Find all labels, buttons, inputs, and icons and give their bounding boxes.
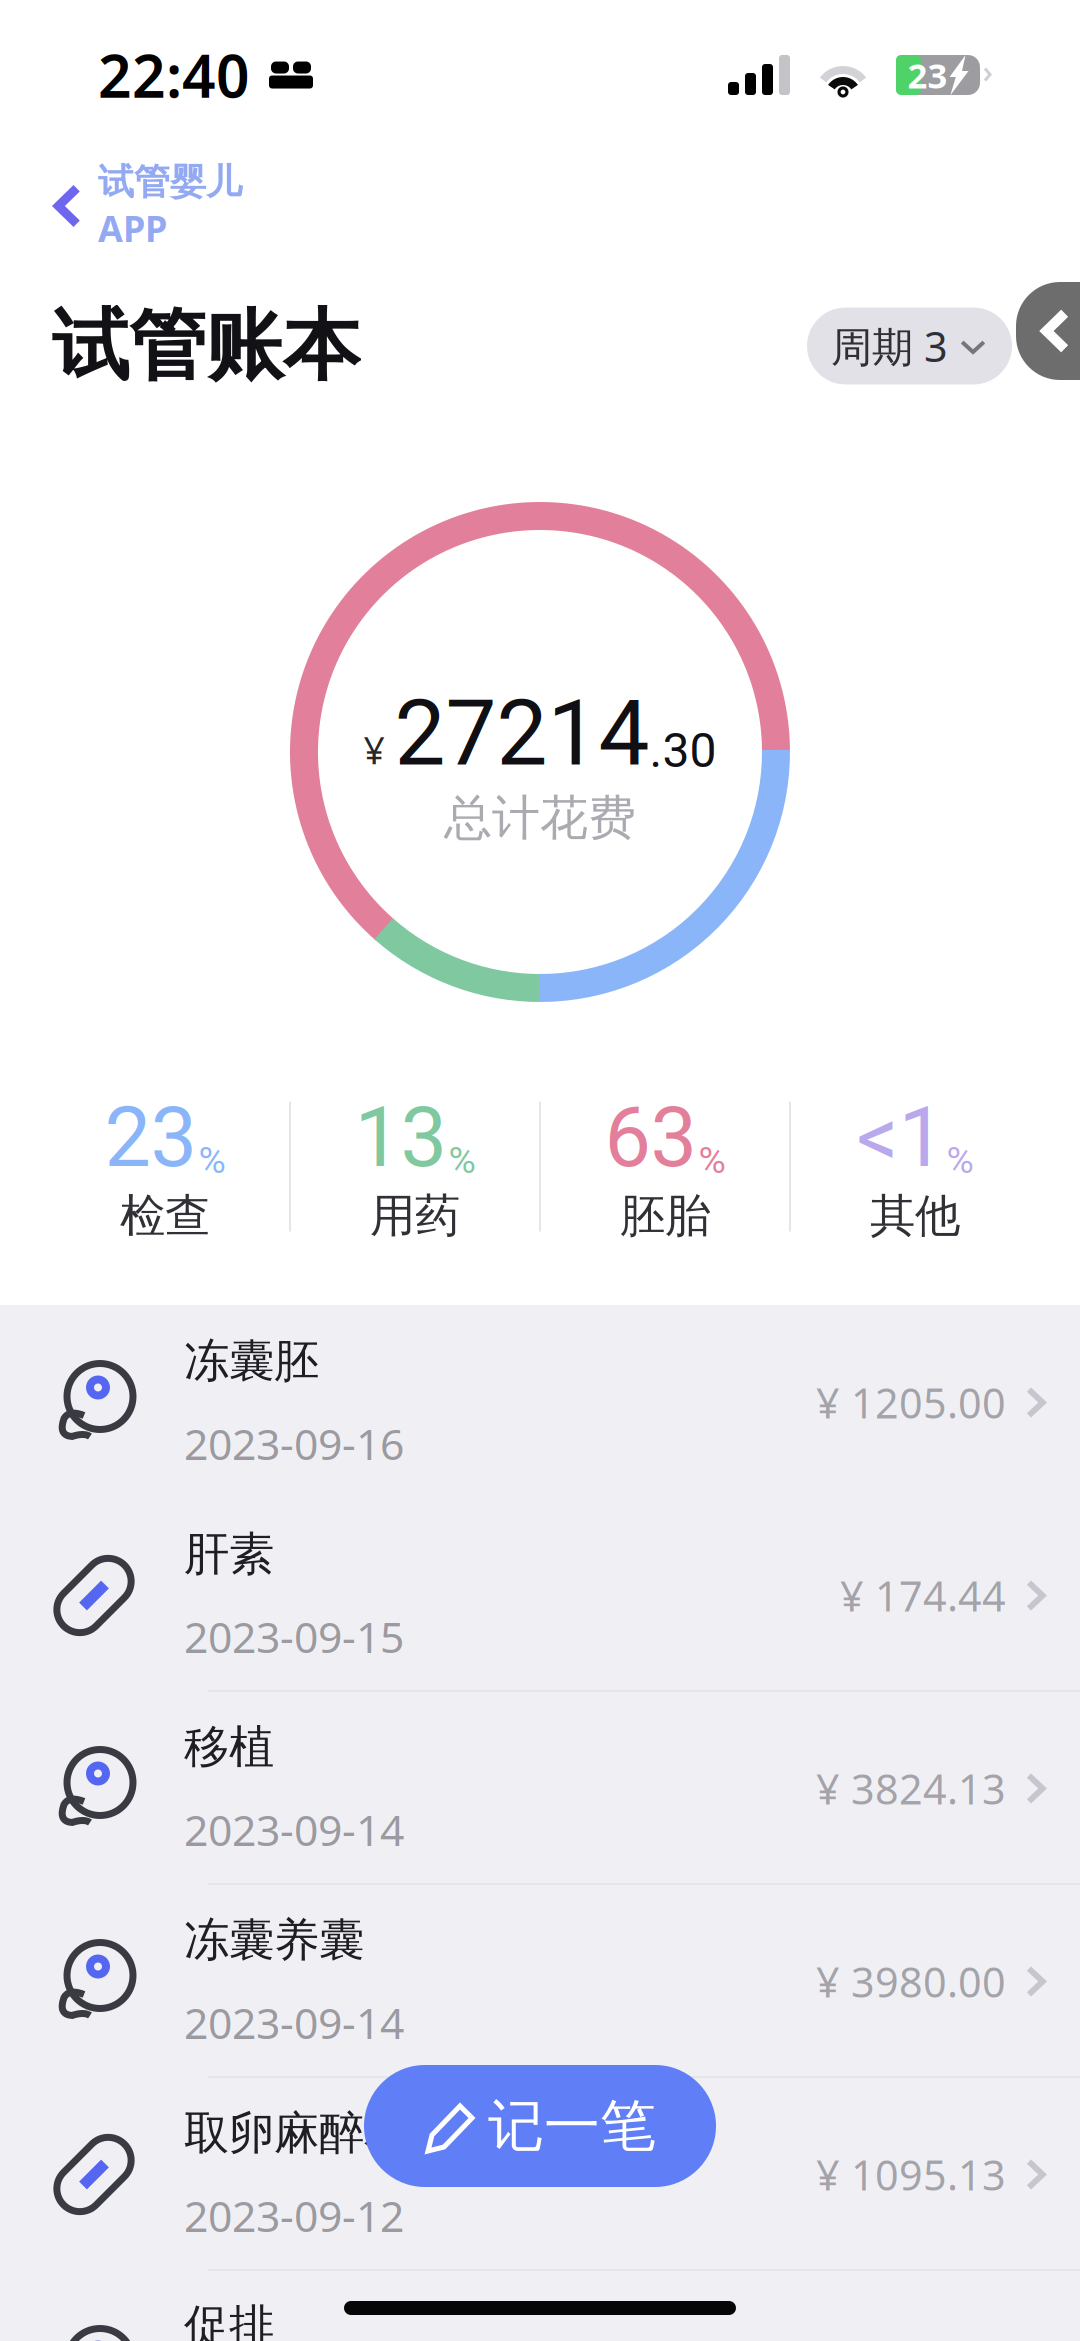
staticText: 63 [604, 1089, 696, 1186]
staticText: % [698, 1138, 725, 1182]
staticText: 取卵麻醉和 [184, 2105, 409, 2161]
staticText: 23 [104, 1089, 196, 1186]
staticText: ¥ 3980.00 [816, 1954, 1006, 2009]
staticText: 冻囊养囊 [184, 1912, 364, 1968]
staticText: % [448, 1138, 475, 1182]
button[interactable]: 冻囊胚 [0, 1306, 1080, 1499]
staticText: <1 [856, 1089, 944, 1186]
staticText: 用药 [370, 1188, 460, 1244]
staticText: 2023-09-14 [184, 1994, 404, 2051]
staticText: ¥ [363, 725, 384, 775]
staticText: 胚胎 [620, 1188, 710, 1244]
staticText: 试管婴儿 [98, 160, 242, 204]
staticText: 13 [354, 1089, 446, 1186]
staticText: 2023-09-15 [184, 1608, 404, 1665]
staticText: 冻囊胚 [184, 1333, 319, 1389]
staticText: ¥ 1205.00 [816, 1375, 1006, 1430]
staticText: 肝素 [184, 1526, 274, 1582]
staticText: 移植 [184, 1719, 274, 1775]
staticText: % [946, 1138, 973, 1182]
button[interactable]: 试管婴儿 [0, 160, 242, 252]
staticText: 试管账本 [52, 298, 360, 393]
button[interactable]: 肝素 [0, 1499, 1080, 1692]
staticText: 22:40 [98, 36, 250, 114]
staticText: ¥ 174.44 [840, 1568, 1006, 1623]
staticText: 2023-09-14 [184, 1801, 404, 1858]
button[interactable]: 记一笔 [364, 2065, 716, 2187]
staticText: 27214 [394, 680, 649, 787]
button[interactable]: 周期 3 [807, 308, 1012, 384]
staticText: ¥ 3824.13 [816, 1761, 1006, 1816]
button[interactable]: 促排 [0, 2271, 1080, 2341]
staticText: 周期 3 [831, 319, 948, 373]
staticText: % [198, 1138, 225, 1182]
staticText: 2023-09-12 [184, 2187, 404, 2244]
staticText: 检查 [120, 1188, 210, 1244]
staticText: 23 [907, 52, 947, 98]
staticText: .30 [649, 722, 716, 779]
staticText: 其他 [870, 1188, 960, 1244]
button[interactable]: 冻囊养囊 [0, 1885, 1080, 2078]
staticText: 促排 [184, 2298, 274, 2341]
button[interactable]: 取卵麻醉和 [0, 2078, 1080, 2271]
button[interactable]: Back [1016, 282, 1080, 380]
button[interactable]: 移植 [0, 1692, 1080, 1885]
staticText: 总计花费 [444, 789, 636, 848]
staticText: ¥ 1095.13 [816, 2147, 1006, 2202]
staticText: 记一笔 [488, 2092, 656, 2160]
staticText: 2023-09-16 [184, 1415, 404, 1472]
staticText: APP [98, 204, 167, 252]
